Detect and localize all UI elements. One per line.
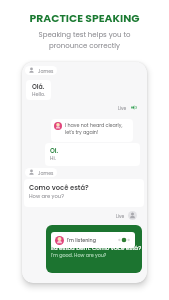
button[interactable]: Live — [118, 104, 137, 111]
staticText: I have not heard clearly, let's try agai… — [65, 122, 130, 136]
button[interactable]: Como você está? — [24, 179, 144, 207]
staticText: Live — [116, 213, 125, 219]
button[interactable]: I'm listening — [46, 225, 142, 273]
other: Profile — [128, 211, 137, 220]
staticText: Eu estou bem. Como você está? — [51, 244, 142, 252]
button[interactable]: I have not heard clearly, let's try agai… — [51, 119, 133, 142]
other: Play audio — [130, 104, 137, 111]
staticText: James — [38, 170, 54, 176]
staticText: Hi. — [50, 155, 56, 162]
button[interactable]: Oi. — [45, 143, 140, 166]
staticText: How are you? — [29, 193, 64, 200]
button[interactable]: Live — [116, 211, 137, 220]
button[interactable]: James — [28, 67, 54, 74]
button[interactable]: Olá. — [26, 80, 51, 100]
staticText: Olá. — [32, 82, 45, 91]
staticText: I'm good. How are you? — [51, 252, 107, 259]
staticText: Speaking test helps you to pronounce cor… — [0, 30, 169, 51]
staticText: Hello. — [32, 91, 46, 98]
staticText: Oi. — [50, 146, 59, 155]
staticText: I'm listening — [67, 237, 96, 244]
staticText: James — [38, 68, 54, 74]
button[interactable]: James — [28, 169, 54, 176]
staticText: PRACTICE SPEAKING — [0, 11, 169, 26]
staticText: Como você está? — [29, 183, 89, 193]
button[interactable]: I'm listening — [51, 232, 135, 248]
staticText: Live — [118, 105, 127, 111]
